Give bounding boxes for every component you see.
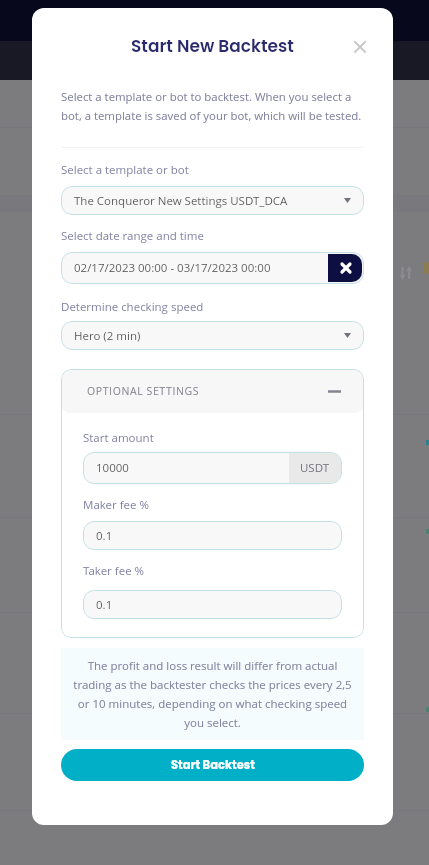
staticText: Maker fee % <box>83 497 149 513</box>
staticText: The profit and loss result will differ f… <box>72 658 353 731</box>
staticText: 0.1 <box>96 597 113 613</box>
staticText: Determine checking speed <box>61 299 204 315</box>
staticText: Start amount <box>83 430 154 446</box>
button[interactable]: Hero (2 min) <box>61 321 364 350</box>
button[interactable]: 0.1 <box>83 590 342 619</box>
staticText: 0.1 <box>96 528 113 544</box>
staticText: Start Backtest <box>171 757 255 773</box>
staticText: Select a template or bot to backtest. Wh… <box>61 89 364 124</box>
button[interactable]: The Conqueror New Settings USDT_DCA <box>61 186 364 215</box>
staticText: Hero (2 min) <box>74 328 141 344</box>
button[interactable]: OPTIONAL SETTINGS <box>61 369 364 413</box>
staticText: 10000 <box>96 460 129 476</box>
staticText: Taker fee % <box>83 563 145 579</box>
staticText: Start New Backtest <box>131 34 294 58</box>
button[interactable]: Start Backtest <box>61 749 364 781</box>
button[interactable]: 0.1 <box>83 521 342 550</box>
button[interactable]: 10000 <box>83 452 342 484</box>
staticText: USDT <box>300 460 330 476</box>
button[interactable]: Close <box>348 35 372 59</box>
staticText: OPTIONAL SETTINGS <box>87 384 200 398</box>
staticText: 02/17/2023 00:00 - 03/17/2023 00:00 <box>74 260 271 276</box>
staticText: The Conqueror New Settings USDT_DCA <box>74 193 288 209</box>
staticText: Select a template or bot <box>61 162 189 178</box>
button[interactable]: 02/17/2023 00:00 - 03/17/2023 00:00 <box>61 252 364 284</box>
staticText: Select date range and time <box>61 228 204 244</box>
button[interactable]: Clear dates <box>328 254 362 282</box>
